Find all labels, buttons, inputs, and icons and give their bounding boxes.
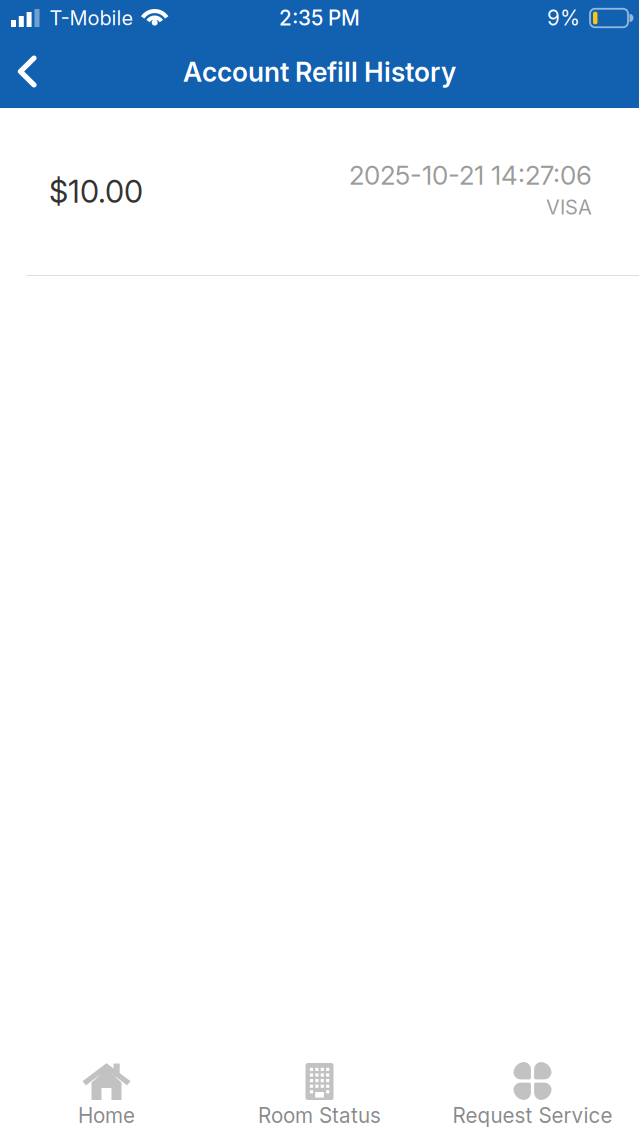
- staticText: 9%: [547, 5, 580, 30]
- button[interactable]: Room Status: [213, 1054, 426, 1136]
- staticText: 2025-10-21 14:27:06: [349, 160, 592, 191]
- staticText: 2:35 PM: [279, 5, 360, 30]
- button[interactable]: $10.00: [0, 108, 639, 275]
- staticText: Room Status: [258, 1103, 381, 1128]
- staticText: Account Refill History: [183, 56, 456, 88]
- staticText: Home: [78, 1103, 135, 1128]
- button[interactable]: Back: [0, 36, 50, 107]
- staticText: $10.00: [49, 173, 143, 210]
- staticText: T-Mobile: [49, 6, 133, 30]
- button[interactable]: Home: [0, 1054, 213, 1136]
- staticText: Request Service: [452, 1103, 612, 1128]
- staticText: VISA: [546, 195, 592, 219]
- button[interactable]: Request Service: [426, 1054, 639, 1136]
